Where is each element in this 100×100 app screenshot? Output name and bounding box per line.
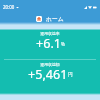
- staticText: 20:00: [3, 4, 15, 10]
- other: Home: [36, 16, 42, 22]
- button[interactable]: 運用収益率: [0, 29, 100, 95]
- staticText: +6.1: [36, 35, 61, 52]
- staticText: 運用収益率: [0, 31, 100, 36]
- staticText: 運用収益額: [0, 62, 100, 67]
- staticText: %: [61, 41, 65, 47]
- staticText: 円: [68, 72, 73, 78]
- staticText: ホーム: [46, 15, 64, 22]
- staticText: +5,461: [28, 66, 68, 83]
- button[interactable]: Home: [0, 15, 100, 22]
